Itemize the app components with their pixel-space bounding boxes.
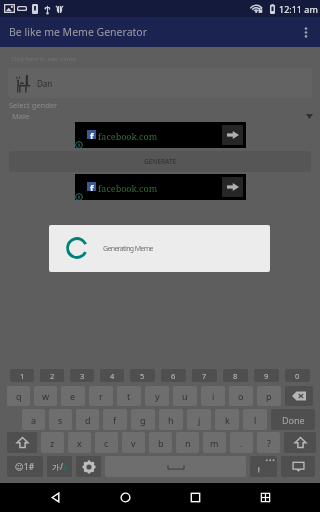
- button[interactable]: More options: [292, 17, 320, 47]
- button[interactable]: d: [76, 409, 99, 430]
- button[interactable]: f: [75, 174, 246, 200]
- button[interactable]: s: [49, 409, 72, 430]
- button[interactable]: w: [34, 386, 57, 406]
- button[interactable]: 0: [285, 369, 310, 382]
- button[interactable]: 5: [130, 369, 155, 382]
- staticText: 12:11 am: [279, 3, 318, 15]
- button[interactable]: Male: [0, 110, 320, 122]
- button[interactable]: i: [201, 386, 225, 406]
- staticText: z: [50, 437, 55, 449]
- staticText: p: [266, 390, 272, 402]
- staticText: ☺1#: [15, 461, 35, 473]
- button[interactable]: ?: [257, 432, 280, 453]
- staticText: v: [131, 437, 136, 449]
- button[interactable]: p: [257, 386, 281, 406]
- button[interactable]: Comma: [250, 456, 277, 477]
- staticText: b: [158, 437, 164, 449]
- button[interactable]: Open advertisement: [222, 125, 243, 145]
- button[interactable]: Done: [271, 409, 315, 430]
- button[interactable]: z: [41, 432, 64, 453]
- staticText: 7: [202, 371, 207, 381]
- button[interactable]: y: [145, 386, 169, 406]
- button[interactable]: q: [7, 386, 30, 406]
- button[interactable]: x: [68, 432, 91, 453]
- staticText: 5: [140, 371, 145, 381]
- button[interactable]: Home: [110, 483, 140, 512]
- staticText: .: [240, 437, 243, 449]
- staticText: e: [70, 390, 76, 402]
- staticText: facebook.com: [98, 130, 158, 142]
- button[interactable]: l: [243, 409, 267, 430]
- staticText: 가: [52, 462, 60, 472]
- staticText: 8: [233, 371, 238, 381]
- staticText: r: [99, 390, 103, 402]
- button[interactable]: r: [89, 386, 113, 406]
- staticText: n: [185, 437, 191, 449]
- staticText: k: [225, 414, 230, 426]
- staticText: f: [113, 414, 117, 426]
- staticText: 3: [80, 371, 85, 381]
- button[interactable]: t: [117, 386, 141, 406]
- staticText: /: [60, 461, 63, 472]
- button[interactable]: Space: [105, 456, 246, 477]
- button[interactable]: Change language: [47, 456, 72, 477]
- button[interactable]: Open advertisement: [222, 177, 243, 197]
- staticText: g: [140, 414, 146, 426]
- button[interactable]: Dan: [8, 68, 312, 98]
- button[interactable]: h: [159, 409, 183, 430]
- button[interactable]: u: [173, 386, 197, 406]
- staticText: d: [85, 414, 91, 426]
- button[interactable]: f: [103, 409, 127, 430]
- button[interactable]: Recent apps: [180, 483, 210, 512]
- button[interactable]: j: [187, 409, 211, 430]
- staticText: Done: [282, 414, 305, 426]
- button[interactable]: v: [122, 432, 145, 453]
- staticText: o: [238, 390, 244, 402]
- staticText: l: [254, 414, 257, 426]
- staticText: c: [104, 437, 109, 449]
- button[interactable]: 6: [161, 369, 186, 382]
- button[interactable]: Back: [40, 483, 70, 512]
- staticText: 2: [50, 371, 55, 381]
- button[interactable]: n: [176, 432, 199, 453]
- button[interactable]: e: [61, 386, 85, 406]
- button[interactable]: Split screen: [250, 483, 280, 512]
- staticText: facebook.com: [98, 182, 158, 194]
- button[interactable]: o: [229, 386, 253, 406]
- button[interactable]: c: [95, 432, 118, 453]
- button[interactable]: Keyboard settings: [76, 456, 101, 477]
- staticText: 9: [264, 371, 269, 381]
- staticText: 6: [171, 371, 176, 381]
- staticText: f: [90, 130, 94, 139]
- staticText: 1: [20, 371, 25, 381]
- button[interactable]: 1: [10, 369, 34, 382]
- button[interactable]: k: [215, 409, 239, 430]
- staticText: i: [212, 390, 215, 402]
- button[interactable]: m: [203, 432, 226, 453]
- button[interactable]: 8: [223, 369, 248, 382]
- button[interactable]: Hide keyboard: [281, 456, 315, 477]
- staticText: GENERATE: [144, 157, 177, 166]
- button[interactable]: a: [22, 409, 45, 430]
- staticText: Male: [12, 111, 30, 121]
- button[interactable]: g: [131, 409, 155, 430]
- button[interactable]: 4: [100, 369, 124, 382]
- button[interactable]: 2: [40, 369, 64, 382]
- button[interactable]: 9: [254, 369, 279, 382]
- button[interactable]: ☺1#: [7, 456, 43, 477]
- button[interactable]: Shift: [284, 432, 316, 453]
- button[interactable]: Shift: [7, 432, 37, 453]
- button[interactable]: 3: [70, 369, 94, 382]
- staticText: 0: [295, 371, 300, 381]
- staticText: f: [90, 182, 94, 191]
- button[interactable]: b: [149, 432, 172, 453]
- button[interactable]: 7: [192, 369, 217, 382]
- staticText: a: [31, 414, 37, 426]
- staticText: u: [182, 390, 188, 402]
- staticText: Dan: [37, 78, 53, 89]
- button[interactable]: f: [75, 122, 246, 148]
- button[interactable]: Backspace: [285, 386, 313, 406]
- staticText: y: [155, 390, 160, 402]
